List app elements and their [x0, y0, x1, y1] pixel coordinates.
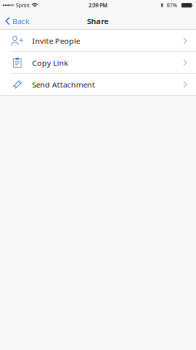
- staticText: Share: [87, 16, 109, 26]
- button[interactable]: Back: [0, 10, 33, 30]
- staticText: Send Attachment: [32, 79, 95, 90]
- staticText: Back: [12, 16, 29, 26]
- button[interactable]: Send Attachment: [0, 74, 196, 95]
- button[interactable]: Invite People: [0, 30, 196, 51]
- staticText: 2:39 PM: [88, 2, 107, 9]
- button[interactable]: Copy Link: [0, 52, 196, 73]
- staticText: 87%: [167, 2, 177, 9]
- staticText: Copy Link: [32, 57, 68, 68]
- staticText: Invite People: [32, 35, 80, 46]
- staticText: Sprint: [16, 2, 30, 9]
